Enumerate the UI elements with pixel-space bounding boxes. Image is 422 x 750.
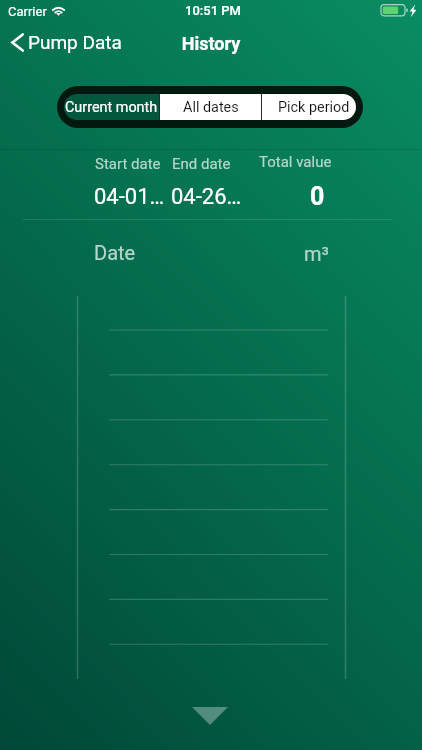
other: Back	[11, 33, 24, 52]
staticText: History	[0, 33, 422, 54]
staticText: 10:51 PM	[2, 3, 422, 18]
staticText: Start date	[95, 155, 161, 173]
button[interactable]: End date	[166, 150, 250, 210]
staticText: Current month	[65, 99, 158, 116]
staticText: End date	[172, 155, 231, 173]
staticText: Carrier	[8, 4, 47, 19]
staticText: 04-26…	[171, 184, 242, 210]
staticText: m³	[304, 242, 329, 265]
staticText: Pump Data	[28, 31, 122, 53]
button[interactable]: All dates	[160, 94, 261, 120]
staticText: 0	[310, 182, 325, 211]
button[interactable]: Current month	[64, 94, 159, 120]
staticText: Total value	[259, 153, 332, 171]
staticText: 04-01…	[94, 184, 165, 210]
button[interactable]: Back	[0, 25, 134, 59]
staticText: Pick period	[278, 99, 350, 116]
button[interactable]: Start date	[86, 150, 166, 210]
staticText: Date	[94, 241, 136, 264]
other: Wi-Fi	[51, 4, 66, 16]
other: Battery charging	[380, 4, 422, 18]
button[interactable]: Pick period	[262, 94, 356, 120]
staticText: All dates	[183, 99, 239, 116]
button[interactable]: Scroll down	[192, 707, 228, 725]
